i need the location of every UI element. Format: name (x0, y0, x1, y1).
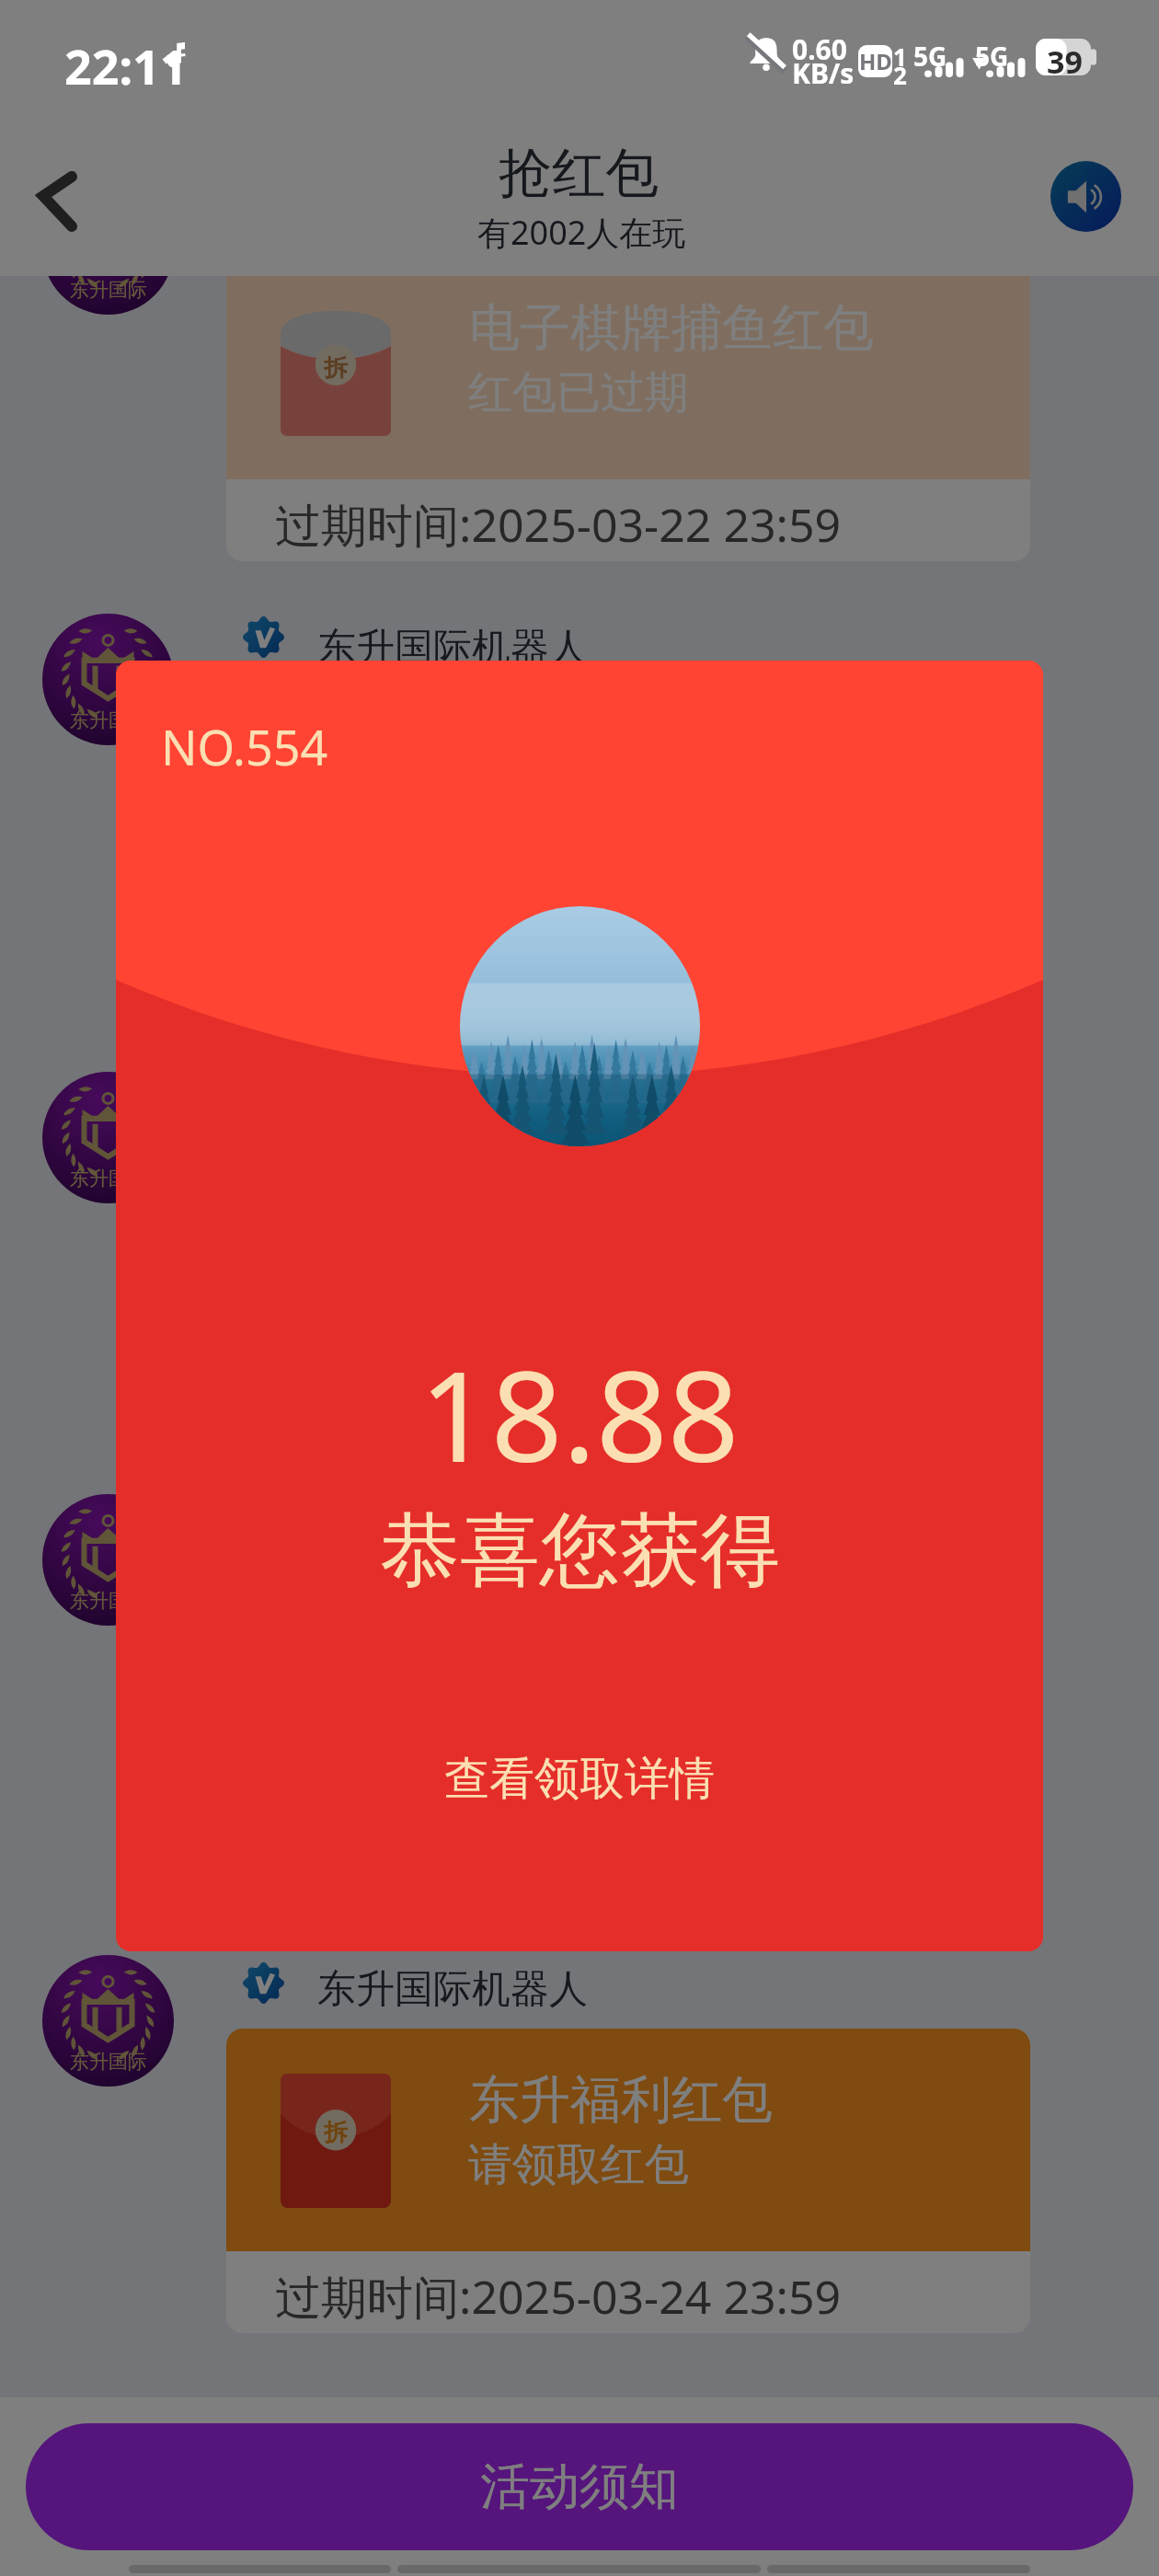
staticText: 过期时间:2025-03-23 23:59 (275, 1374, 842, 1436)
button[interactable]: 拆 (226, 1137, 1030, 1442)
button[interactable]: 拆 (226, 257, 1030, 561)
staticText: 过期时间:2025-03-23 23:59 (275, 1796, 842, 1858)
button[interactable]: NO.554 (116, 661, 1043, 1951)
staticText: KB/s (792, 54, 855, 92)
staticText: NO.554 (161, 714, 328, 779)
staticText: 东升国际机器人 (317, 624, 588, 673)
staticText: 过期时间:2025-03-22 23:59 (275, 493, 842, 556)
staticText: 东升国际 (70, 708, 147, 732)
staticText: 过期时间:2025-03-24 23:59 (275, 2265, 842, 2328)
staticText: 活动须知 (480, 2455, 679, 2518)
staticText: 1 (893, 40, 907, 73)
staticText: 有2002人在玩 (477, 210, 686, 255)
button[interactable]: Sound (1050, 161, 1121, 232)
staticText: 东升国际 (70, 278, 147, 302)
staticText: 2 (893, 59, 907, 91)
staticText: 18.88 (419, 1328, 740, 1499)
staticText: 东升国际 (70, 2050, 147, 2074)
staticText: 22:11 (64, 33, 188, 98)
button[interactable]: 拆 (226, 2029, 1030, 2333)
staticText: 过期时间:2025-03-23 23:59 (275, 917, 842, 980)
button[interactable]: 拆 (226, 1559, 1030, 1864)
staticText: HD (859, 46, 892, 76)
staticText: 东升国际 (70, 1167, 147, 1190)
staticText: 电子棋牌捕鱼红包 (469, 296, 874, 360)
staticText: 红包已过期 (468, 365, 689, 420)
staticText: 拆 (324, 2118, 348, 2148)
button[interactable]: 活动须知 (26, 2423, 1133, 2550)
staticText: 抢红包 (499, 140, 659, 207)
staticText: 5G (913, 39, 947, 74)
button[interactable]: 拆 (226, 681, 1030, 985)
staticText: 东升国际机器人 (317, 1965, 588, 2014)
staticText: 查看领取详情 (444, 1751, 715, 1808)
staticText: 39 (1047, 40, 1083, 83)
staticText: 0.60 (792, 30, 847, 68)
staticText: 恭喜您获得 (380, 1501, 780, 1602)
staticText: 东升福利红包 (469, 2068, 773, 2132)
staticText: 请领取红包 (468, 2137, 689, 2192)
staticText: 拆 (324, 353, 348, 384)
staticText: 东升国际 (70, 1589, 147, 1613)
staticText: 5G (975, 39, 1009, 74)
button[interactable]: Back (9, 144, 110, 245)
